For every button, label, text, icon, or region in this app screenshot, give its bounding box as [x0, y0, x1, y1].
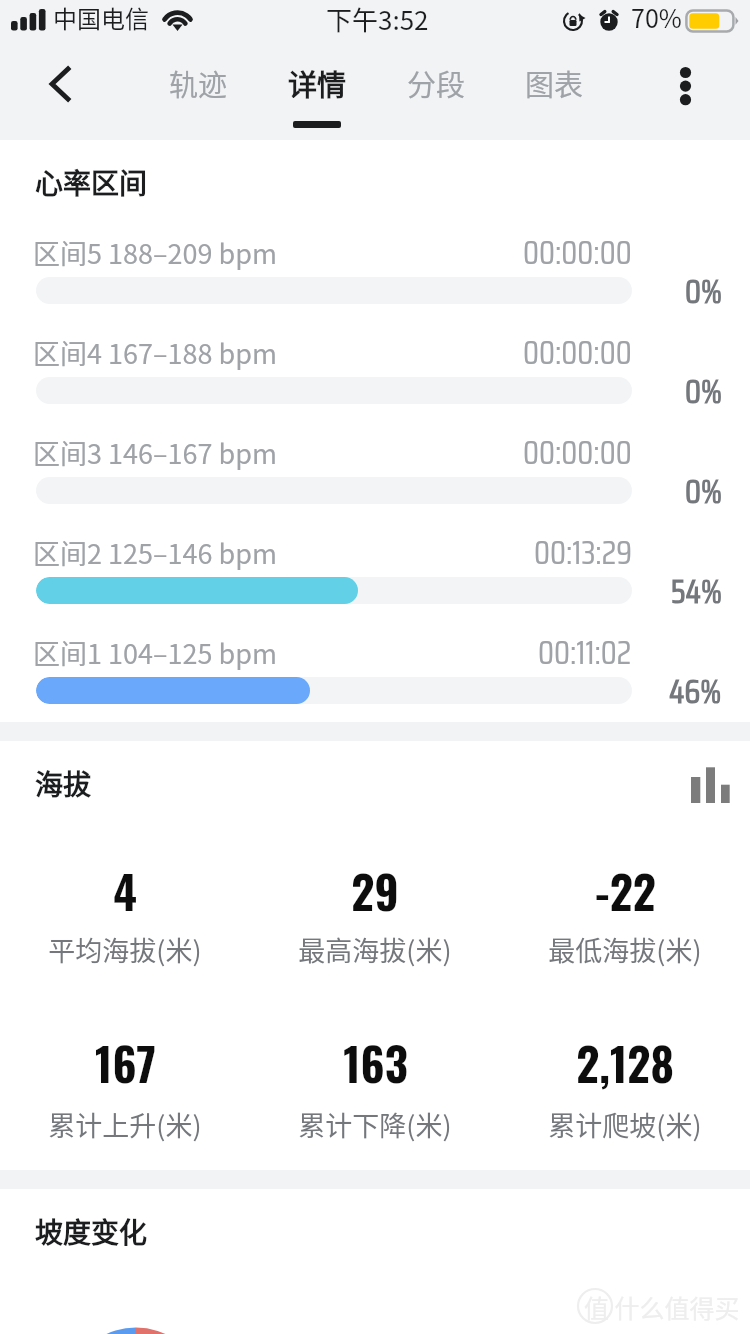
button[interactable]: 区间2 125–146 bpm	[0, 533, 750, 629]
staticText: 00:00:00	[523, 427, 632, 479]
button[interactable]: 轨迹	[164, 44, 232, 140]
staticText: 心率区间	[35, 162, 148, 203]
staticText: 00:00:00	[523, 327, 632, 379]
staticText: -22	[595, 857, 656, 924]
button[interactable]: 163	[250, 1029, 500, 1096]
staticText: 00:13:29	[534, 527, 632, 579]
staticText: 00:00:00	[523, 227, 632, 279]
staticText: 2,128	[576, 1029, 674, 1096]
staticText: 70%	[631, 0, 682, 35]
staticText: 详情	[288, 62, 347, 104]
staticText: 167	[95, 1029, 156, 1096]
button[interactable]: 区间5 188–209 bpm	[0, 233, 750, 329]
staticText: 0%	[685, 366, 722, 418]
staticText: 区间4 167–188 bpm	[33, 333, 277, 372]
staticText: 00:11:02	[538, 627, 632, 679]
button[interactable]: 4	[0, 857, 250, 924]
staticText: 轨迹	[169, 62, 228, 104]
button[interactable]: 区间1 104–125 bpm	[0, 633, 750, 729]
staticText: 值 什么值得买	[584, 1289, 740, 1325]
staticText: 163	[343, 1029, 408, 1096]
staticText: 坡度变化	[35, 1211, 148, 1252]
staticText: 4	[113, 857, 137, 924]
button[interactable]: 图表	[520, 44, 588, 140]
staticText: 区间3 146–167 bpm	[33, 433, 277, 472]
button[interactable]: 区间3 146–167 bpm	[0, 433, 750, 529]
staticText: 54%	[671, 566, 722, 618]
button[interactable]: -22	[500, 857, 750, 924]
button[interactable]: 详情	[283, 44, 351, 140]
button[interactable]: Back	[20, 44, 100, 140]
button[interactable]: 区间4 167–188 bpm	[0, 333, 750, 429]
button[interactable]: 2,128	[500, 1029, 750, 1096]
button[interactable]: 分段	[402, 44, 470, 140]
staticText: 累计下降(米)	[298, 1105, 452, 1144]
staticText: 平均海拔(米)	[48, 930, 202, 969]
staticText: 图表	[525, 62, 584, 104]
staticText: 区间5 188–209 bpm	[33, 233, 277, 272]
button[interactable]: 167	[0, 1029, 250, 1096]
staticText: 最低海拔(米)	[548, 930, 702, 969]
button[interactable]: Chart	[672, 756, 734, 814]
staticText: 0%	[685, 466, 722, 518]
staticText: 中国电信	[53, 0, 149, 35]
staticText: 下午3:52	[326, 0, 429, 38]
staticText: 29	[351, 857, 399, 924]
staticText: 46%	[669, 666, 722, 718]
staticText: 累计上升(米)	[48, 1105, 202, 1144]
button[interactable]: More options	[652, 44, 722, 134]
staticText: 区间2 125–146 bpm	[33, 533, 277, 572]
staticText: 累计爬坡(米)	[548, 1105, 702, 1144]
button[interactable]: 29	[250, 857, 500, 924]
staticText: 分段	[407, 62, 466, 104]
staticText: 最高海拔(米)	[298, 930, 452, 969]
staticText: 海拔	[35, 763, 92, 804]
staticText: 区间1 104–125 bpm	[33, 633, 277, 672]
staticText: 0%	[685, 266, 722, 318]
